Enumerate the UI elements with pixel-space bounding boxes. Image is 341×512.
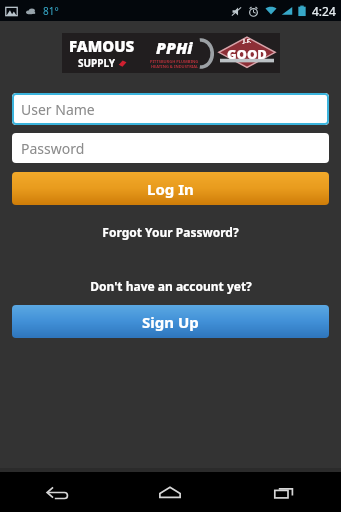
staticText: PPHi [156, 37, 193, 59]
staticText: Sign Up [142, 312, 199, 332]
button[interactable]: Home [113, 472, 227, 512]
staticText: Password [21, 139, 85, 158]
staticText: FAMOUS [69, 36, 135, 56]
staticText: GOOD [227, 45, 267, 63]
button[interactable]: Log In [12, 172, 329, 205]
button[interactable]: Forgot Your Password? [0, 222, 341, 242]
staticText: User Name [21, 100, 95, 119]
staticText: Forgot Your Password? [102, 224, 239, 240]
button[interactable]: Recent apps [227, 472, 341, 512]
staticText: PITTSBURGH PLUMBING [150, 59, 199, 64]
button[interactable]: Back [0, 472, 113, 512]
staticText: 81° [43, 4, 59, 18]
staticText: J.F. [243, 37, 252, 45]
button[interactable]: Password [12, 133, 329, 163]
staticText: Don't have an account yet? [90, 278, 252, 294]
staticText: Log In [147, 179, 194, 199]
staticText: SUPPLY [78, 56, 116, 70]
button[interactable]: Sign Up [12, 305, 329, 338]
staticText: 4:24 [312, 3, 336, 19]
staticText: HEATING & INDUSTRIAL [151, 64, 199, 69]
button[interactable]: User Name [12, 93, 329, 125]
